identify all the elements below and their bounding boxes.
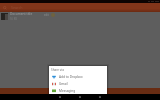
button[interactable]: Gmail <box>49 80 107 87</box>
button[interactable]: Add to Dropbox <box>49 73 107 80</box>
button[interactable]: Messaging <box>49 87 107 94</box>
button[interactable]: Back <box>55 94 65 100</box>
staticText: Share via <box>51 68 64 72</box>
staticText: Gmail <box>59 82 68 86</box>
button[interactable]: Home <box>75 94 85 100</box>
staticText: edit <box>44 13 49 17</box>
button[interactable]: Document title <box>0 12 160 20</box>
staticText: Add to Dropbox <box>59 75 83 79</box>
staticText: Search <box>11 5 23 10</box>
staticText: 56 KB <box>10 17 17 20</box>
staticText: Document title <box>10 12 33 16</box>
button[interactable]: Recent apps <box>95 94 105 100</box>
staticText: Messaging <box>59 89 76 93</box>
button[interactable]: Search <box>0 3 9 12</box>
